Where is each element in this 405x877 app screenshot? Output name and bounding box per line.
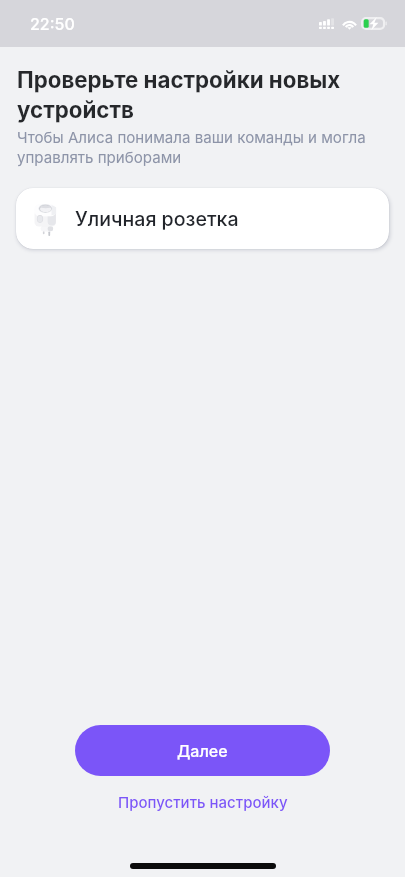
staticText: Уличная розетка [75, 207, 239, 231]
staticText: Далее [177, 741, 228, 760]
staticText: Проверьте настройки новых устройств [17, 66, 365, 123]
button[interactable]: Уличная розетка [16, 188, 389, 249]
staticText: Чтобы Алиса понимала ваши команды и могл… [17, 128, 381, 167]
button[interactable]: Пропустить настройку [108, 790, 298, 814]
button[interactable]: Далее [75, 725, 330, 776]
staticText: 22:50 [30, 14, 75, 33]
staticText: Пропустить настройку [118, 793, 288, 811]
